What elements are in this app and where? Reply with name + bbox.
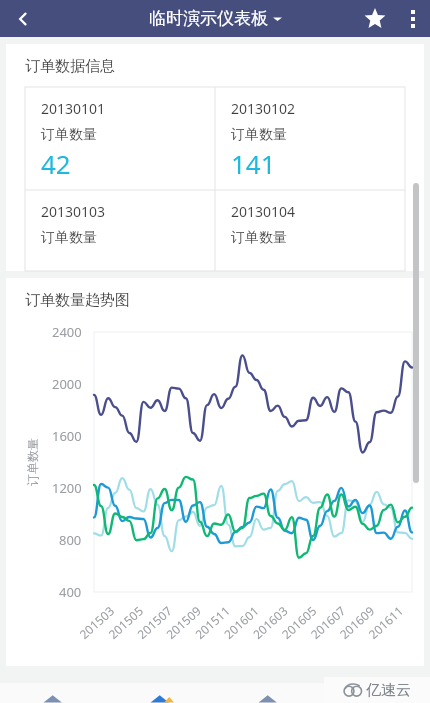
button[interactable]: Reports xyxy=(133,683,189,703)
staticText: 20130103 xyxy=(41,202,106,221)
button[interactable]: 临时演示仪表板 xyxy=(149,8,282,29)
button[interactable]: Me xyxy=(348,683,404,703)
button[interactable]: Favorite xyxy=(354,0,396,37)
button[interactable]: 20130104 xyxy=(215,190,405,271)
staticText: 141 xyxy=(231,146,276,181)
staticText: 订单数量 xyxy=(231,126,287,144)
staticText: 订单数量 xyxy=(41,126,97,144)
staticText: 订单数量 xyxy=(231,229,287,247)
button[interactable]: 20130101 xyxy=(25,87,215,190)
button[interactable]: Analysis xyxy=(241,683,297,703)
staticText: 20130101 xyxy=(41,99,106,118)
button[interactable]: 20130102 xyxy=(215,87,405,190)
button[interactable]: Dashboards xyxy=(26,683,82,703)
button[interactable]: More options xyxy=(396,0,430,37)
staticText: 亿速云 xyxy=(366,681,411,700)
staticText: 20130104 xyxy=(231,202,296,221)
staticText: 订单数量趋势图 xyxy=(25,291,130,310)
staticText: 临时演示仪表板 xyxy=(149,8,268,29)
button[interactable]: Back xyxy=(0,0,46,37)
staticText: 订单数据信息 xyxy=(25,57,115,76)
staticText: 订单数量 xyxy=(41,229,97,247)
staticText: 42 xyxy=(41,146,71,181)
staticText: 20130102 xyxy=(231,99,296,118)
button[interactable]: 20130103 xyxy=(25,190,215,271)
